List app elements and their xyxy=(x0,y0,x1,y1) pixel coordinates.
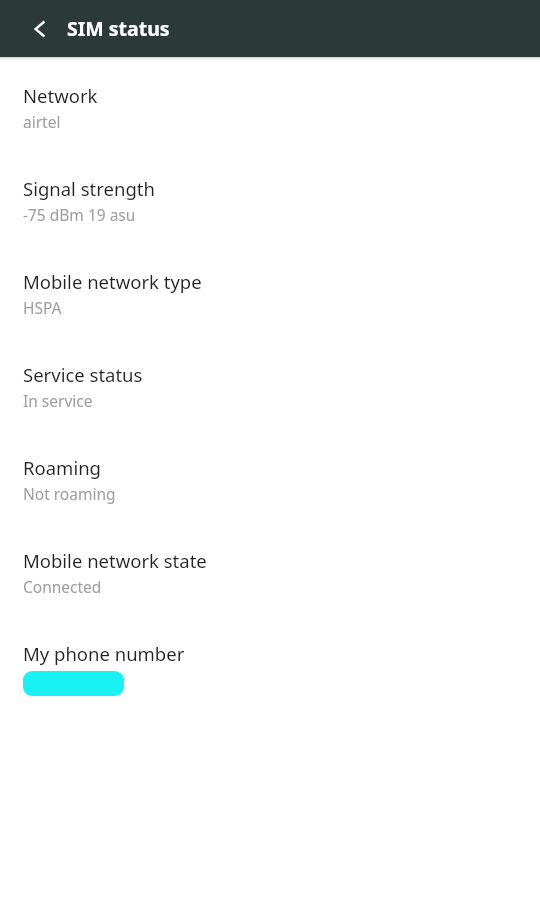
staticText: Roaming xyxy=(23,455,101,480)
staticText: Mobile network state xyxy=(23,548,207,573)
staticText: HSPA xyxy=(23,297,62,318)
button[interactable]: Service status xyxy=(0,351,540,422)
staticText: Mobile network type xyxy=(23,269,202,294)
button[interactable]: Mobile network state xyxy=(0,537,540,608)
staticText: Not roaming xyxy=(23,483,116,504)
staticText: Connected xyxy=(23,576,102,597)
staticText: -75 dBm 19 asu xyxy=(23,204,136,225)
staticText: My phone number xyxy=(23,641,185,666)
staticText: SIM status xyxy=(67,15,170,42)
button[interactable]: Back xyxy=(18,7,62,51)
button[interactable]: My phone number xyxy=(0,630,540,707)
staticText: Service status xyxy=(23,362,143,387)
staticText: In service xyxy=(23,390,93,411)
button[interactable]: Roaming xyxy=(0,444,540,515)
staticText: airtel xyxy=(23,111,61,132)
staticText: Signal strength xyxy=(23,176,155,201)
button[interactable]: Signal strength xyxy=(0,165,540,236)
button[interactable]: Mobile network type xyxy=(0,258,540,329)
staticText: Network xyxy=(23,83,98,108)
button[interactable]: Network xyxy=(0,72,540,143)
